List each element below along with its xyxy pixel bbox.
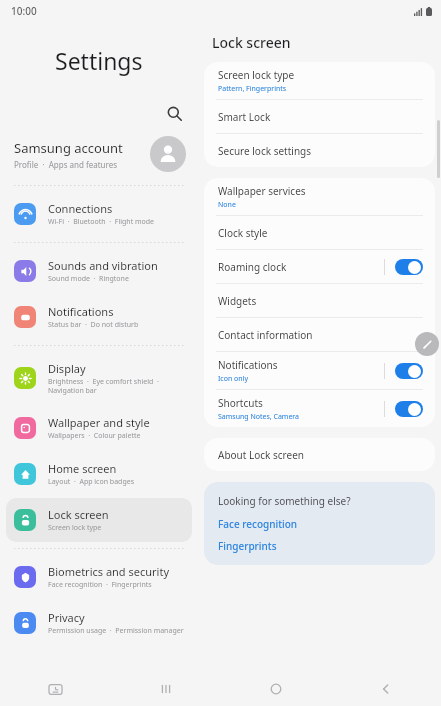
staticText: Clock style [218, 226, 268, 240]
button[interactable]: Notifications [204, 352, 435, 389]
button[interactable]: Connections [6, 192, 192, 236]
button[interactable]: Notifications [6, 295, 192, 339]
button[interactable]: Shortcuts [204, 390, 435, 427]
staticText: Connections [48, 201, 113, 216]
staticText: 10:00 [11, 4, 37, 18]
staticText: Icon only [218, 374, 249, 384]
staticText: Profile · Apps and features [14, 159, 118, 170]
staticText: Smart Lock [218, 110, 271, 124]
staticText: Privacy [48, 610, 85, 625]
button[interactable]: Widgets [204, 284, 435, 317]
button[interactable]: Smart Lock [204, 100, 435, 133]
button[interactable]: Privacy [6, 601, 192, 645]
button[interactable]: Notifications toggle [395, 363, 423, 379]
staticText: Samsung account [14, 139, 123, 157]
staticText: Looking for something else? [218, 494, 351, 508]
staticText: Samsung Notes, Camera [218, 412, 300, 422]
staticText: Notifications [218, 358, 278, 372]
staticText: Wallpapers · Colour palette [48, 431, 141, 441]
button[interactable]: Biometrics and security [6, 555, 192, 599]
staticText: Fingerprints [218, 539, 277, 553]
button[interactable]: Lock screen [6, 498, 192, 542]
button[interactable]: Contact information [204, 318, 435, 351]
staticText: Sound mode · Ringtone [48, 274, 129, 284]
button[interactable]: Shortcuts toggle [395, 401, 423, 417]
staticText: Status bar · Do not disturb [48, 320, 139, 330]
staticText: Permission usage · Permission manager [48, 626, 184, 636]
staticText: Face recognition · Fingerprints [48, 580, 152, 590]
staticText: Wi-Fi · Bluetooth · Flight mode [48, 217, 155, 227]
button[interactable]: Roaming clock toggle [395, 259, 423, 275]
staticText: Screen lock type [218, 68, 295, 82]
button[interactable]: Wallpaper and style [6, 406, 192, 450]
staticText: Wallpaper services [218, 184, 306, 198]
button[interactable]: Back [331, 672, 441, 706]
button[interactable]: Screen capture [0, 672, 111, 706]
staticText: Settings [55, 45, 143, 76]
button[interactable]: Recents [111, 672, 221, 706]
button[interactable]: Samsung account [0, 128, 198, 180]
staticText: Pattern, Fingerprints [218, 84, 287, 94]
staticText: Contact information [218, 328, 313, 342]
button[interactable]: Search [160, 99, 188, 127]
button[interactable]: Fingerprints [218, 539, 277, 553]
button[interactable]: Edit [415, 332, 439, 356]
staticText: Lock screen [48, 507, 109, 522]
staticText: Secure lock settings [218, 144, 311, 158]
staticText: Notifications [48, 304, 114, 319]
staticText: Face recognition [218, 517, 298, 531]
staticText: None [218, 200, 236, 210]
staticText: Brightness · Eye comfort shield · Naviga… [48, 377, 159, 395]
button[interactable]: Face recognition [218, 517, 298, 531]
button[interactable]: Display [6, 352, 192, 404]
staticText: Display [48, 361, 86, 376]
button[interactable]: Clock style [204, 216, 435, 249]
staticText: Home screen [48, 461, 117, 476]
button[interactable]: Sounds and vibration [6, 249, 192, 293]
staticText: Lock screen [212, 33, 291, 52]
button[interactable]: Home screen [6, 452, 192, 496]
button[interactable]: Home [221, 672, 331, 706]
button[interactable]: Screen lock type [204, 62, 435, 99]
button[interactable]: Secure lock settings [204, 134, 435, 167]
staticText: Widgets [218, 294, 257, 308]
staticText: Sounds and vibration [48, 258, 158, 273]
button[interactable]: Roaming clock [204, 250, 435, 283]
staticText: Screen lock type [48, 523, 102, 533]
staticText: About Lock screen [218, 448, 304, 462]
staticText: Layout · App icon badges [48, 477, 135, 487]
staticText: Wallpaper and style [48, 415, 150, 430]
button[interactable]: About Lock screen [204, 438, 435, 471]
staticText: Biometrics and security [48, 564, 169, 579]
button[interactable]: Wallpaper services [204, 178, 435, 215]
staticText: Roaming clock [218, 260, 287, 274]
staticText: Shortcuts [218, 396, 263, 410]
